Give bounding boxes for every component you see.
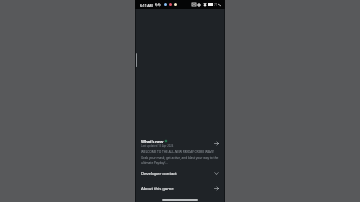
button[interactable]: Open what's new: [214, 141, 219, 146]
button[interactable]: About this game: [135, 183, 225, 193]
button[interactable]: Developer contact: [135, 168, 225, 178]
staticText: About this game: [141, 185, 174, 191]
staticText: What's new: [141, 138, 164, 144]
staticText: WELCOME TO THE ALL-NEW PAYDAY CRIME WAVE…: [141, 150, 219, 165]
staticText: 71: [214, 3, 218, 7]
staticText: Last updated 13 Apr 2024: [141, 144, 174, 148]
other: Open about this game: [214, 186, 219, 191]
other: Expand: [214, 171, 219, 176]
staticText: Developer contact: [141, 170, 177, 176]
button[interactable]: What's new: [135, 138, 225, 165]
staticText: 6:11 AM: [140, 3, 153, 8]
